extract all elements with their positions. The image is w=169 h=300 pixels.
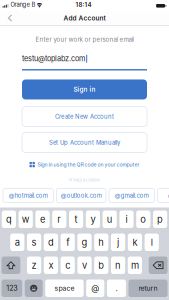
staticText: m <box>131 260 139 271</box>
staticText: f <box>66 237 69 248</box>
button[interactable]: Sign in <box>22 79 147 99</box>
staticText: a <box>15 237 20 248</box>
button[interactable]: o <box>136 210 150 228</box>
staticText: Sign in using the QR code on your comput… <box>37 161 139 168</box>
button[interactable]: a <box>10 233 24 251</box>
button[interactable]: @hotmail.com <box>3 188 53 202</box>
staticText: h <box>98 237 104 248</box>
button[interactable]: Shift <box>1 256 20 274</box>
button[interactable]: @ <box>86 279 104 297</box>
button[interactable]: @outlook.com <box>56 188 106 202</box>
staticText: s <box>32 237 37 248</box>
staticText: r <box>57 214 61 225</box>
button[interactable]: m <box>128 256 142 274</box>
staticText: i <box>125 214 127 225</box>
staticText: v <box>82 260 87 271</box>
button[interactable]: q <box>2 210 16 228</box>
button[interactable]: Delete <box>149 256 167 274</box>
button[interactable]: g <box>77 233 92 251</box>
button[interactable]: k <box>128 233 142 251</box>
staticText: d <box>48 237 54 248</box>
button[interactable]: 123 <box>1 279 22 297</box>
button[interactable]: . <box>107 279 126 297</box>
staticText: return <box>138 284 157 292</box>
button[interactable]: @gmail.com <box>109 188 154 202</box>
button[interactable]: t <box>69 210 83 228</box>
staticText: @hotmail.com <box>9 192 48 199</box>
staticText: . <box>115 283 117 293</box>
staticText: q <box>6 214 12 225</box>
button[interactable]: l <box>145 233 159 251</box>
button[interactable]: s <box>27 233 41 251</box>
button[interactable]: e <box>35 210 50 228</box>
button[interactable]: d <box>44 233 58 251</box>
staticText: 123 <box>6 284 17 293</box>
button[interactable]: z <box>27 256 41 274</box>
staticText: Sign in <box>73 86 95 93</box>
button[interactable]: f <box>61 233 75 251</box>
staticText: e <box>40 214 45 225</box>
staticText: y <box>90 214 95 225</box>
staticText: Add Account <box>63 14 105 22</box>
staticText: w <box>22 214 30 225</box>
staticText: z <box>32 260 37 271</box>
staticText: @y <box>168 192 169 199</box>
button[interactable]: Emoji <box>25 279 43 297</box>
button[interactable]: Sign in using the QR code on your comput… <box>30 152 139 170</box>
staticText: g <box>81 237 87 248</box>
staticText: space <box>54 284 74 292</box>
button[interactable]: n <box>111 256 125 274</box>
staticText: @gmail.com <box>115 192 149 199</box>
button[interactable]: Create New Account <box>22 106 147 126</box>
button[interactable]: @y <box>157 188 169 202</box>
button[interactable]: c <box>61 256 75 274</box>
staticText: testu@toplabz.com <box>22 54 85 63</box>
button[interactable]: return <box>128 279 167 297</box>
staticText: @ <box>91 283 99 293</box>
button[interactable]: space <box>45 279 84 297</box>
staticText: l <box>151 237 153 248</box>
staticText: Create New Account <box>55 113 114 120</box>
staticText: t <box>75 214 78 225</box>
staticText: j <box>117 237 119 248</box>
button[interactable]: j <box>111 233 125 251</box>
staticText: p <box>157 214 163 225</box>
button[interactable]: x <box>44 256 58 274</box>
button[interactable]: w <box>19 210 33 228</box>
button[interactable]: p <box>153 210 167 228</box>
staticText: b <box>98 260 104 271</box>
staticText: Orange B <box>8 1 35 8</box>
staticText: Enter your work or personal email <box>35 36 133 43</box>
button[interactable]: h <box>94 233 108 251</box>
staticText: k <box>132 237 137 248</box>
button[interactable]: Set Up Account Manually <box>22 132 147 152</box>
button[interactable]: u <box>103 210 117 228</box>
staticText: Set Up Account Manually <box>49 139 120 146</box>
button[interactable]: y <box>86 210 100 228</box>
staticText: o <box>140 214 146 225</box>
staticText: u <box>107 214 113 225</box>
button[interactable]: b <box>94 256 108 274</box>
staticText: 18:14 <box>75 1 91 8</box>
button[interactable]: i <box>119 210 134 228</box>
button[interactable]: r <box>52 210 66 228</box>
staticText: c <box>65 260 70 271</box>
staticText: @outlook.com <box>61 192 102 199</box>
staticText: n <box>115 260 121 271</box>
staticText: Privacy & Cookies <box>69 178 100 182</box>
button[interactable]: Back <box>0 11 19 25</box>
button[interactable]: v <box>77 256 92 274</box>
staticText: x <box>48 260 53 271</box>
